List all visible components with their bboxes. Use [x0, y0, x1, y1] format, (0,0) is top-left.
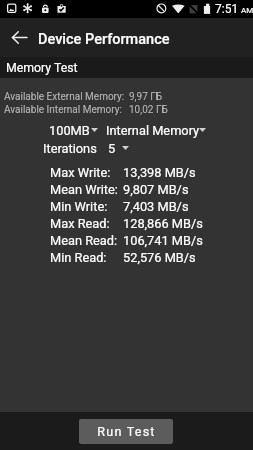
staticText: Available External Memory:	[4, 91, 125, 103]
button[interactable]: Back	[0, 18, 38, 57]
staticText: 52,576 MB/s	[123, 250, 196, 265]
staticText: 9,97 ГБ	[129, 91, 163, 103]
staticText: Max Write:	[50, 165, 111, 180]
staticText: 106,741 MB/s	[123, 233, 203, 248]
staticText: Mean Write:	[50, 182, 118, 197]
staticText: Internal Memory	[106, 123, 200, 138]
staticText: Device Performance	[38, 31, 170, 48]
button[interactable]: 100MB	[43, 120, 102, 138]
staticText: Min Write:	[50, 199, 108, 214]
button[interactable]: Internal Memory	[102, 120, 210, 138]
staticText: 13,398 MB/s	[123, 165, 196, 180]
staticText: Memory Test	[6, 61, 78, 75]
staticText: Mean Read:	[50, 233, 118, 248]
staticText: Run Test	[97, 424, 156, 439]
staticText: 7,403 MB/s	[123, 199, 189, 214]
staticText: Available Internal Memory:	[4, 104, 122, 116]
staticText: 10,02 ГБ	[129, 104, 168, 116]
staticText: 9,807 MB/s	[123, 182, 189, 197]
staticText: 128,866 MB/s	[123, 216, 203, 231]
staticText: AM	[241, 6, 253, 15]
button[interactable]: Run Test	[79, 419, 173, 444]
staticText: Max Read:	[50, 216, 110, 231]
staticText: 100MB	[49, 123, 90, 138]
button[interactable]: 5	[102, 137, 136, 155]
staticText: Min Read:	[50, 250, 107, 265]
staticText: Iterations	[43, 141, 97, 156]
staticText: 7:51	[215, 2, 239, 16]
staticText: 5	[108, 141, 116, 156]
